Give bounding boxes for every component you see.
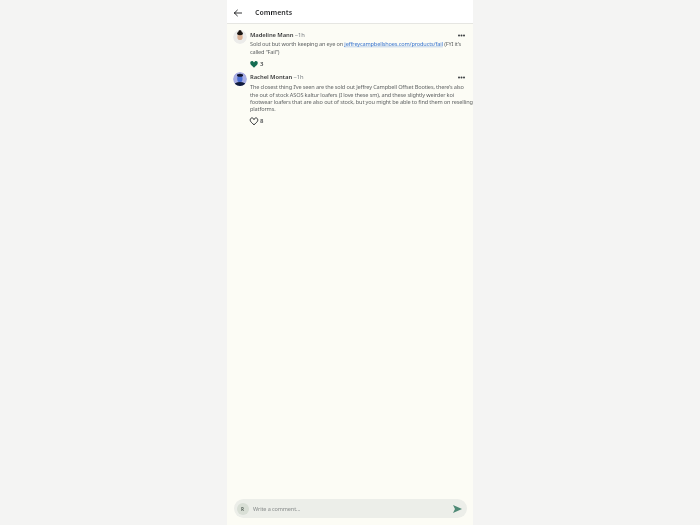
staticText: Sold out but worth keeping an eye on jef… xyxy=(250,40,461,56)
button[interactable]: 8 xyxy=(249,116,265,126)
staticText: Comments xyxy=(255,8,293,17)
staticText: 3 xyxy=(260,60,264,68)
staticText: Write a comment... xyxy=(253,505,301,512)
staticText: 8 xyxy=(260,117,264,125)
staticText: Rachel Montan ~1h xyxy=(250,73,304,81)
staticText: The closest thing I’ve seen are the sold… xyxy=(250,83,473,113)
button[interactable]: 3 xyxy=(249,59,265,69)
button[interactable]: R xyxy=(234,499,467,518)
button[interactable] xyxy=(231,6,245,20)
button[interactable] xyxy=(457,32,466,38)
button[interactable] xyxy=(451,503,463,515)
staticText: R xyxy=(241,506,245,512)
button[interactable] xyxy=(457,74,466,80)
staticText: Madeline Mann ~1h xyxy=(250,31,305,39)
